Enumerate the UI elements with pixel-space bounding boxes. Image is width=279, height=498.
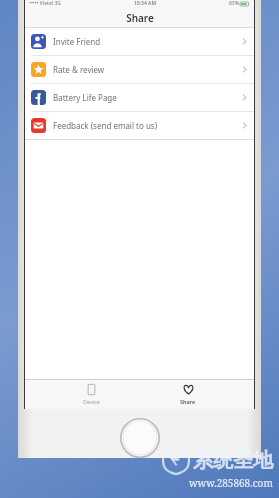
button[interactable]: Device <box>61 379 121 409</box>
staticText: 10:34 AM <box>134 0 156 7</box>
staticText: Rate & review <box>53 64 105 75</box>
staticText: Share <box>180 398 196 405</box>
staticText: Invite Friend <box>53 36 101 47</box>
button[interactable]: Share <box>158 379 218 409</box>
button[interactable]: Invite Friend <box>25 28 254 55</box>
staticText: Feedback (send email to us) <box>53 120 158 131</box>
staticText: www.285868.com <box>189 476 273 490</box>
button[interactable]: Feedback (send email to us) <box>25 112 254 139</box>
staticText: 83% <box>229 0 239 7</box>
staticText: ••••• Vietel 3G <box>29 0 61 7</box>
staticText: Battery Life Page <box>53 92 117 103</box>
staticText: 系统圣地 <box>193 448 273 473</box>
button[interactable]: Battery Life Page <box>25 84 254 111</box>
button[interactable]: Rate & review <box>25 56 254 83</box>
staticText: Device <box>83 398 100 405</box>
staticText: Share <box>126 11 154 25</box>
